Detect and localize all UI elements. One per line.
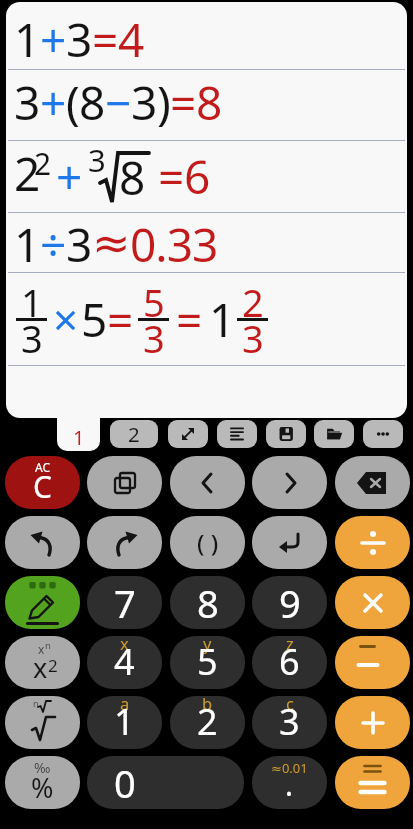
staticText: x [38, 641, 45, 657]
button[interactable]: ‰ [5, 756, 80, 809]
button[interactable] [170, 456, 245, 509]
staticText: 8 [197, 577, 219, 629]
staticText: 3 [131, 71, 157, 134]
staticText: 1 [209, 288, 235, 351]
button[interactable]: z [252, 636, 327, 689]
staticText: 3 [143, 312, 165, 364]
staticText: c [286, 696, 294, 714]
staticText: 5 [197, 637, 218, 686]
staticText: 7 [114, 577, 136, 629]
staticText: 5 [143, 276, 165, 328]
button[interactable] [266, 420, 306, 448]
staticText: 3 [242, 312, 264, 364]
button[interactable]: b [170, 696, 245, 749]
staticText: % [31, 769, 54, 806]
staticText: 3 [279, 697, 300, 746]
button[interactable]: 0 [87, 756, 244, 809]
button[interactable] [335, 756, 410, 809]
button[interactable]: AC [5, 456, 80, 509]
button[interactable] [314, 420, 354, 448]
staticText: ( ) [197, 526, 219, 559]
button[interactable] [217, 420, 257, 448]
staticText: b [202, 696, 213, 714]
staticText: = [107, 288, 133, 351]
staticText: 6 [184, 145, 210, 208]
button[interactable]: x [87, 636, 162, 689]
staticText: 1 [73, 424, 85, 451]
staticText: 3 [14, 71, 40, 134]
staticText: 0 [114, 757, 136, 809]
staticText: = [92, 8, 118, 71]
button[interactable] [335, 456, 410, 509]
button[interactable] [5, 576, 80, 629]
staticText: 9 [279, 577, 301, 629]
button[interactable] [363, 420, 403, 448]
button[interactable]: c [252, 696, 327, 749]
staticText: 1 [14, 213, 40, 272]
button[interactable] [252, 456, 327, 509]
staticText: 1 [14, 8, 40, 71]
staticText: 5 [81, 288, 107, 351]
staticText: a [120, 696, 130, 714]
button[interactable] [335, 636, 410, 689]
button[interactable]: 2 [110, 420, 158, 448]
staticText: + [56, 145, 82, 208]
button[interactable]: a [87, 696, 162, 749]
button[interactable]: ( ) [170, 516, 245, 569]
button[interactable]: 7 [87, 576, 162, 629]
staticText: 0.33 [130, 213, 218, 272]
staticText: z [286, 636, 294, 654]
button[interactable]: y [170, 636, 245, 689]
staticText: ) [157, 71, 170, 134]
button[interactable]: n [5, 696, 80, 749]
staticText: ≈0.01 [271, 759, 308, 777]
staticText: x [120, 636, 129, 654]
staticText: ( [66, 71, 79, 134]
button[interactable] [335, 576, 410, 629]
staticText: = [170, 71, 196, 134]
button[interactable] [335, 696, 410, 749]
staticText: = [158, 145, 184, 208]
staticText: ÷ [40, 213, 66, 272]
staticText: 2 [48, 654, 58, 677]
button[interactable] [335, 516, 410, 569]
button[interactable]: x [5, 636, 80, 689]
staticText: + [40, 71, 66, 134]
button[interactable]: ≈0.01 [252, 756, 327, 809]
staticText: − [105, 71, 131, 134]
staticText: 4 [114, 637, 135, 686]
staticText: 2 [128, 420, 140, 448]
staticText: 4 [118, 8, 144, 71]
staticText: 3 [88, 139, 106, 181]
staticText: n [45, 639, 51, 652]
staticText: y [203, 636, 212, 654]
staticText: AC [35, 459, 51, 475]
staticText: ‰ [34, 758, 51, 777]
staticText: 1 [21, 276, 43, 328]
button[interactable] [5, 516, 80, 569]
staticText: 2 [14, 142, 40, 202]
button[interactable] [252, 516, 327, 569]
staticText: 8 [196, 71, 222, 134]
staticText: 3 [66, 8, 92, 71]
staticText: 2 [197, 697, 218, 746]
button[interactable] [168, 420, 208, 448]
staticText: n [33, 697, 39, 709]
staticText: 2 [34, 143, 52, 184]
staticText: 8 [79, 71, 105, 134]
staticText: 3 [21, 312, 43, 364]
staticText: ≈ [92, 216, 130, 270]
button[interactable]: 8 [170, 576, 245, 629]
button[interactable] [87, 516, 162, 569]
staticText: = [176, 288, 202, 351]
staticText: 8 [119, 146, 146, 206]
button[interactable]: 9 [252, 576, 327, 629]
staticText: 2 [242, 276, 264, 328]
button[interactable] [87, 456, 162, 509]
staticText: × [53, 289, 78, 349]
staticText: + [40, 8, 66, 71]
staticText: 1 [114, 697, 135, 746]
staticText: 6 [279, 637, 300, 686]
button[interactable]: 1 [57, 408, 100, 451]
staticText: . [285, 764, 294, 805]
